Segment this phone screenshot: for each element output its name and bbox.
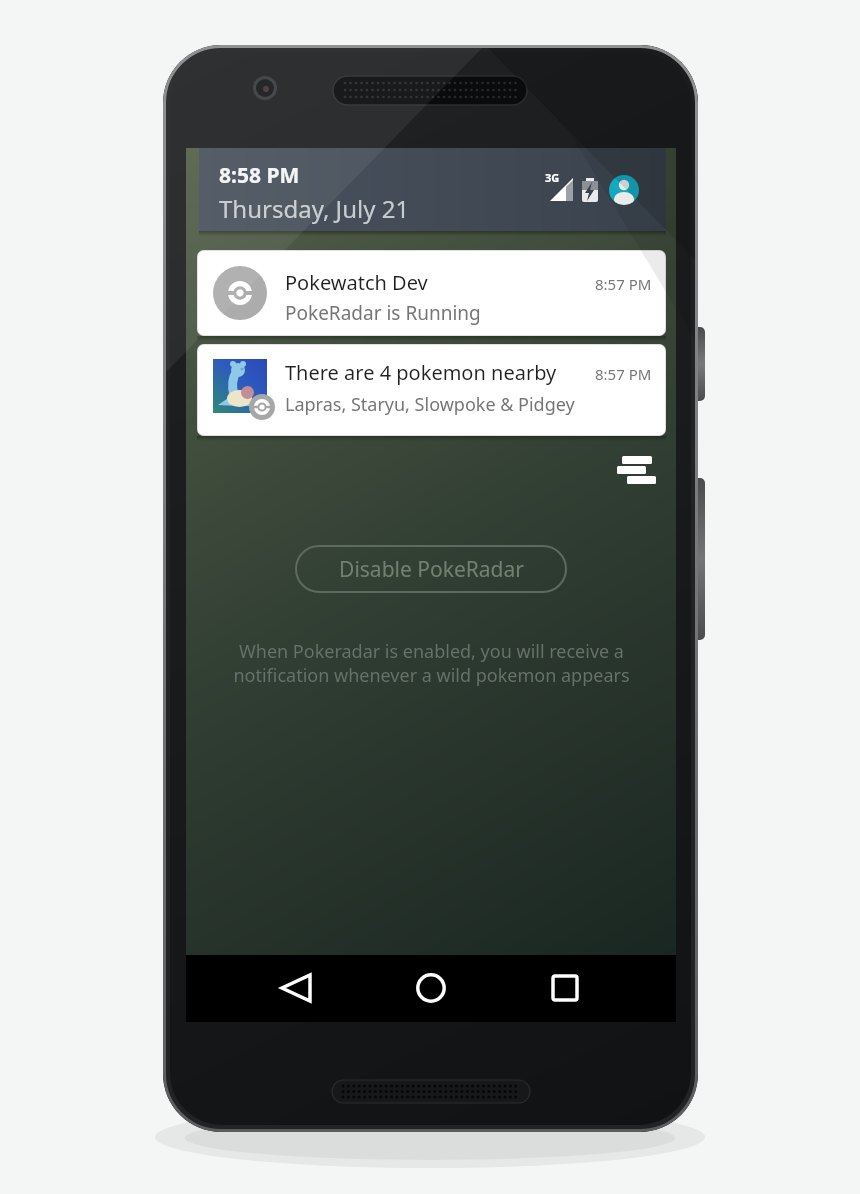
staticText: 3G xyxy=(545,170,560,185)
staticText: Pokewatch Dev xyxy=(285,269,428,296)
staticText: When Pokeradar is enabled, you will rece… xyxy=(239,639,624,664)
staticText: Thursday, July 21 xyxy=(219,192,410,225)
staticText: PokeRadar is Running xyxy=(285,300,481,326)
staticText: Disable PokeRadar xyxy=(339,555,524,584)
staticText: 8:58 PM xyxy=(219,161,300,190)
staticText: 8:57 PM xyxy=(595,274,652,294)
staticText: Lapras, Staryu, Slowpoke & Pidgey xyxy=(285,392,575,417)
staticText: 8:57 PM xyxy=(595,364,652,384)
staticText: notification whenever a wild pokemon app… xyxy=(233,663,630,688)
staticText: There are 4 pokemon nearby xyxy=(285,359,557,386)
